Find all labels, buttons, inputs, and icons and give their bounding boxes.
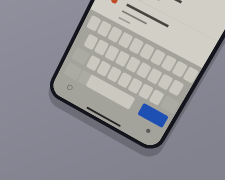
button[interactable] <box>0 0 225 180</box>
